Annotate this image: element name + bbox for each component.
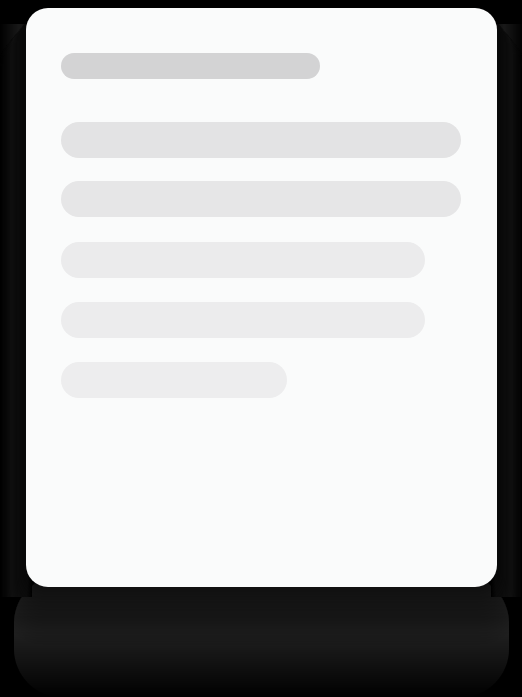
button[interactable]: Loading content	[26, 8, 497, 587]
